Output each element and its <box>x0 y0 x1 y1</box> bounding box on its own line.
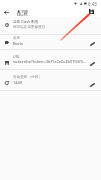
button[interactable]: Description <box>0 17 101 34</box>
staticText: 配置 <box>17 9 29 16</box>
staticText: 您可以在这里修改它 <box>13 25 46 30</box>
staticText: 这是 Clash 配置 <box>13 19 39 24</box>
staticText: 自动更新（分钟） <box>13 75 42 80</box>
staticText: subscribe?token=3bf1e2e0c2b5703f3... <box>13 59 87 64</box>
staticText: Bocls <box>13 41 23 46</box>
button[interactable]: Back <box>0 7 12 17</box>
button[interactable]: URL <box>0 49 101 69</box>
staticText: 1440 <box>13 80 23 85</box>
button[interactable]: Edit <box>85 58 99 69</box>
button[interactable]: 自动更新 <box>0 70 101 90</box>
staticText: 6:43 <box>88 1 97 7</box>
button[interactable]: Save <box>86 6 97 16</box>
button[interactable]: 名称 Bocls <box>0 35 101 49</box>
staticText: 名称 <box>13 36 21 41</box>
staticText: URL <box>13 54 20 59</box>
button[interactable]: Edit <box>85 38 99 49</box>
button[interactable]: Edit <box>85 79 99 90</box>
